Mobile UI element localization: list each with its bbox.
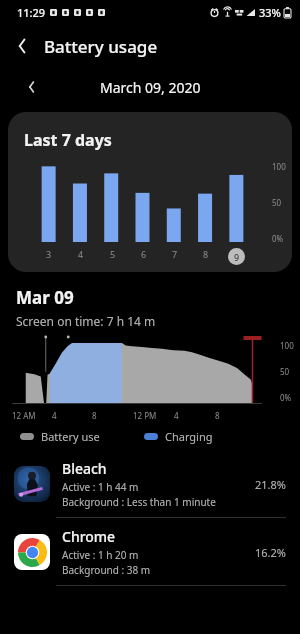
staticText: Screen on time: 7 h 14 m [16, 313, 156, 329]
button[interactable]: Bleach [0, 450, 300, 518]
staticText: Bleach [62, 459, 107, 478]
staticText: Last 7 days [24, 129, 112, 151]
staticText: Active : 1 h 44 m [62, 480, 139, 494]
staticText: Mar 09 [16, 286, 74, 309]
staticText: Active : 1 h 20 m [62, 548, 139, 562]
staticText: 50 [272, 197, 282, 208]
staticText: 0% [272, 233, 284, 244]
staticText: 6 [141, 248, 147, 260]
staticText: Chrome [62, 527, 116, 546]
staticText: March 09, 2020 [100, 78, 201, 97]
staticText: 7 [172, 248, 178, 260]
staticText: 16.2% [255, 545, 286, 560]
staticText: Battery usage [44, 35, 158, 58]
staticText: Background : Less than 1 minute [62, 495, 216, 509]
staticText: 8 [92, 410, 97, 421]
button[interactable]: Last 7 days [8, 112, 292, 272]
staticText: 100 [280, 340, 294, 351]
staticText: 8 [203, 248, 209, 260]
staticText: 0% [280, 392, 292, 403]
staticText: 4 [52, 410, 57, 421]
button[interactable]: Back [6, 29, 40, 63]
staticText: 21.8% [255, 477, 286, 492]
staticText: 12 PM [133, 410, 157, 421]
staticText: 3 [46, 248, 52, 260]
staticText: 4 [174, 410, 179, 421]
staticText: 50 [280, 366, 290, 377]
staticText: 9 [234, 251, 240, 263]
staticText: 8 [215, 410, 220, 421]
staticText: 5 [110, 248, 116, 260]
staticText: 4 [78, 248, 84, 260]
button[interactable]: Previous day [18, 73, 46, 101]
staticText: Background : 38 m [62, 563, 151, 577]
staticText: 33% [259, 5, 281, 20]
staticText: Battery use [41, 429, 100, 444]
staticText: 12 AM [12, 410, 36, 421]
staticText: Charging [165, 429, 213, 444]
button[interactable]: Chrome [0, 518, 300, 586]
staticText: 11:29 [17, 5, 46, 20]
staticText: 100 [272, 161, 286, 172]
